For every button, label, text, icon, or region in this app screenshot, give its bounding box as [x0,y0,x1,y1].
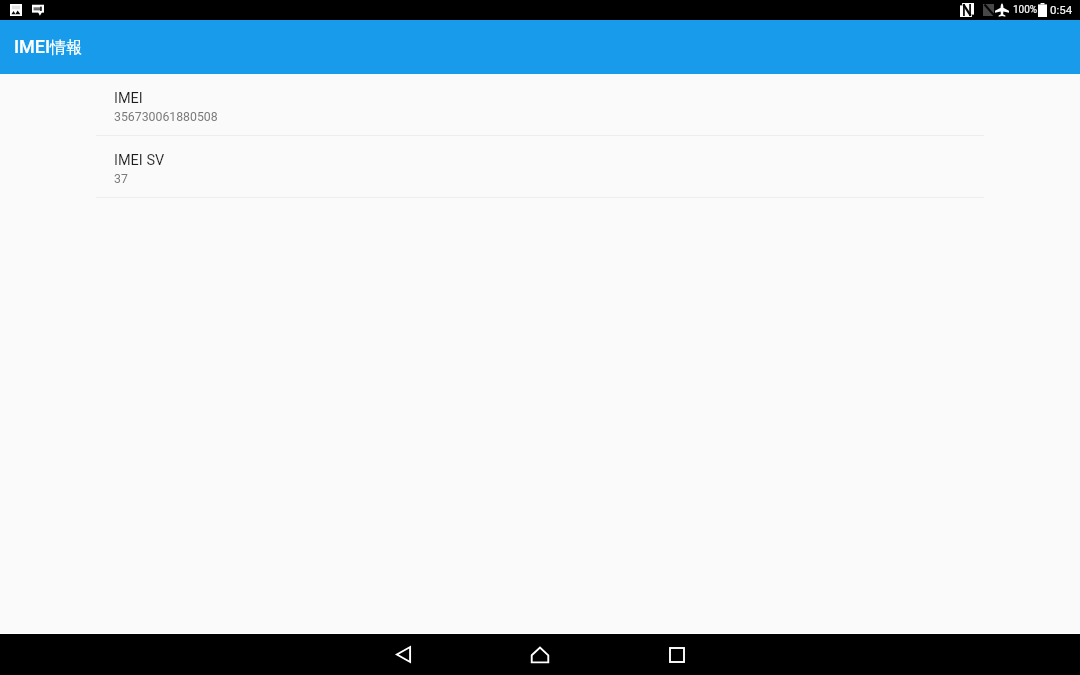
staticText: 356730061880508 [114,110,218,124]
staticText: IMEI SV [114,152,165,169]
button[interactable]: IMEI [0,74,1080,136]
button[interactable]: Recent apps [649,634,705,675]
button[interactable]: Back [375,634,431,675]
button[interactable]: IMEI SV [0,136,1080,198]
staticText: 37 [114,172,128,186]
staticText: IMEI情報 [14,36,83,57]
staticText: 100% [1013,4,1038,16]
staticText: IMEI [114,90,143,107]
staticText: 0:54 [1050,3,1073,16]
button[interactable]: Home [512,634,568,675]
